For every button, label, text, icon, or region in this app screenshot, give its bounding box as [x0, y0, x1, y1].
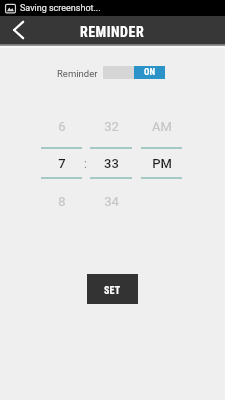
staticText: :	[84, 157, 87, 171]
button[interactable]: SET	[87, 274, 138, 304]
staticText: 32	[104, 119, 119, 134]
staticText: 34	[104, 194, 119, 209]
staticText: 33	[104, 156, 119, 171]
staticText: REMINDER	[80, 24, 145, 40]
button[interactable]: 6	[41, 105, 82, 147]
button[interactable]: Back	[0, 16, 34, 44]
staticText: 7	[58, 156, 66, 171]
button[interactable]: AM	[141, 105, 182, 147]
staticText: AM	[152, 119, 172, 134]
button[interactable]: ON	[103, 66, 165, 79]
button[interactable]: 8	[41, 179, 82, 224]
button[interactable]: 32	[90, 105, 132, 147]
staticText: SET	[104, 285, 121, 297]
button[interactable]: 34	[90, 179, 132, 224]
staticText: 8	[58, 194, 66, 209]
staticText: ON	[144, 67, 155, 78]
staticText: Saving screenshot...	[20, 3, 101, 14]
staticText: 6	[58, 119, 66, 134]
staticText: Reminder	[57, 68, 98, 79]
staticText: PM	[152, 156, 172, 171]
